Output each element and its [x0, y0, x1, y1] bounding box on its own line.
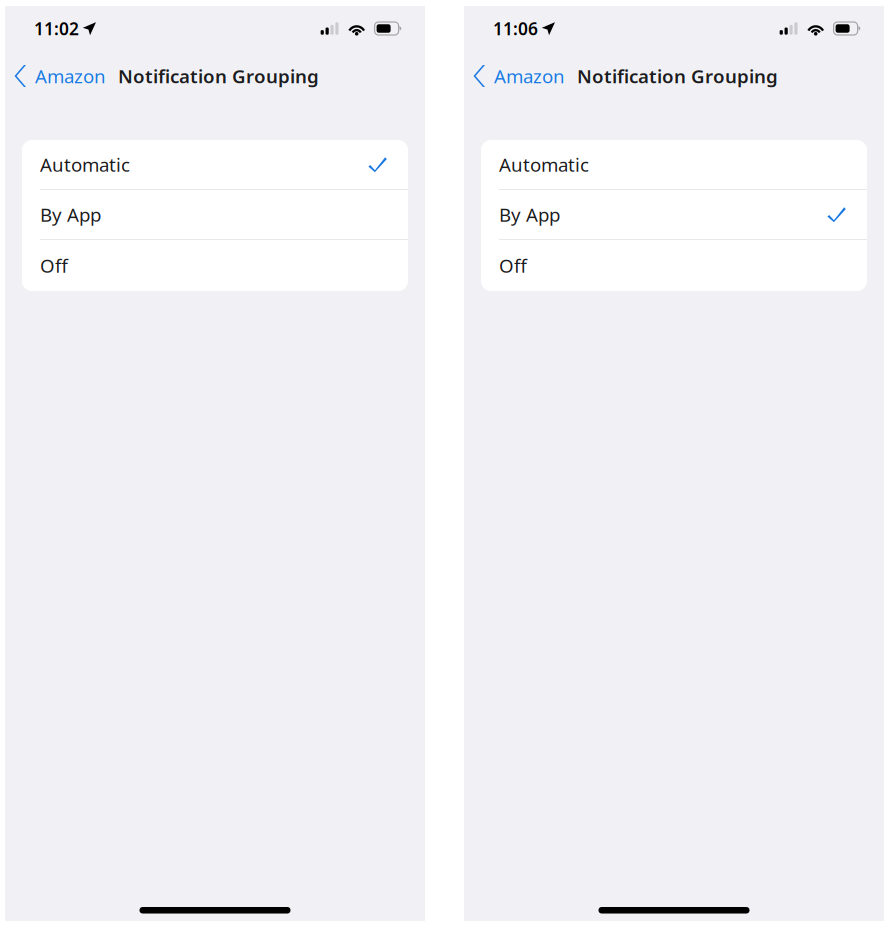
staticText: By App — [499, 202, 560, 227]
staticText: Off — [40, 253, 68, 278]
button[interactable]: Back to Amazon — [10, 56, 110, 96]
staticText: Automatic — [499, 152, 589, 177]
staticText: Off — [499, 253, 527, 278]
staticText: Amazon — [35, 64, 106, 88]
staticText: By App — [40, 202, 101, 227]
button[interactable]: By App — [22, 190, 408, 240]
staticText: 11:02 — [34, 17, 79, 40]
button[interactable]: Automatic — [481, 140, 867, 190]
staticText: 11:06 — [493, 17, 538, 40]
staticText: Amazon — [494, 64, 565, 88]
button[interactable]: By App — [481, 190, 867, 240]
button[interactable]: Back to Amazon — [469, 56, 569, 96]
button[interactable]: Off — [22, 240, 408, 291]
button[interactable]: Automatic — [22, 140, 408, 190]
staticText: Notification Grouping — [577, 64, 778, 88]
staticText: Notification Grouping — [118, 64, 319, 88]
staticText: Automatic — [40, 152, 130, 177]
button[interactable]: Off — [481, 240, 867, 291]
